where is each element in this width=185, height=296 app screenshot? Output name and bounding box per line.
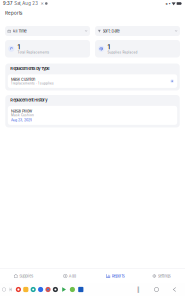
staticText: Reports: [5, 10, 22, 16]
staticText: 1 replacements · 1 supplies: [11, 82, 54, 85]
staticText: Total Replacements: [17, 51, 49, 54]
staticText: Settings: [158, 274, 171, 278]
button[interactable]: All Time: [5, 26, 90, 36]
staticText: Mask Cushion: [11, 77, 35, 82]
staticText: ◂: [165, 1, 167, 6]
staticText: Replacement History: [10, 98, 47, 102]
staticText: 9:37: [3, 1, 12, 6]
button[interactable]: Sort: Date: [95, 26, 180, 36]
staticText: Supplies Replaced: [107, 51, 137, 54]
staticText: Nasal Pillow: [11, 109, 32, 113]
staticText: Add: [69, 274, 76, 278]
button[interactable]: Recent apps: [133, 284, 144, 295]
button[interactable]: Reports: [92, 269, 138, 283]
staticText: Aug 23, 2025: [11, 118, 32, 122]
staticText: Mask Cushion: [11, 113, 34, 117]
staticText: 1: [107, 43, 110, 51]
staticText: Replacements by Type: [10, 66, 49, 71]
staticText: All Time: [13, 29, 27, 33]
button[interactable]: Nasal Pillow: [8, 106, 177, 125]
button[interactable]: Settings: [138, 269, 184, 283]
staticText: Reports: [112, 274, 125, 278]
staticText: •: [168, 1, 170, 6]
staticText: ‖: [137, 286, 140, 293]
staticText: 1: [17, 43, 20, 51]
staticText: Sat, Aug 23: [14, 1, 38, 6]
button[interactable]: Home: [151, 284, 162, 295]
button[interactable]: Add: [46, 269, 92, 283]
button[interactable]: Supplies: [0, 269, 46, 283]
staticText: Supplies: [19, 274, 33, 278]
staticText: ✕: [40, 1, 43, 6]
staticText: Sort: Date: [103, 29, 120, 33]
button[interactable]: Mask Cushion: [8, 74, 177, 88]
button[interactable]: Back: [169, 284, 180, 295]
